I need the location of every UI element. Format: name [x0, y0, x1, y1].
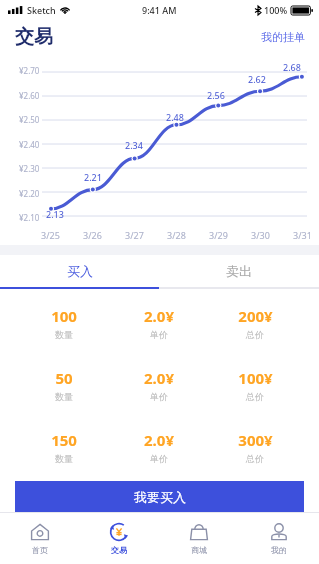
staticText: 交易	[111, 545, 127, 555]
button[interactable]: 商城	[159, 513, 239, 564]
staticText: 我的	[271, 545, 287, 555]
staticText: ¥2.60	[19, 90, 40, 101]
staticText: 2.0¥	[144, 306, 174, 326]
staticText: 2.0¥	[144, 368, 174, 388]
staticText: 300¥	[238, 430, 273, 450]
staticText: 单价	[150, 329, 168, 340]
staticText: 150	[51, 430, 77, 450]
staticText: 100%	[264, 4, 288, 16]
staticText: 单价	[150, 391, 168, 402]
staticText: 9:41 AM	[142, 4, 177, 16]
button[interactable]: 交易	[79, 513, 159, 564]
staticText: 200¥	[238, 306, 273, 326]
staticText: 数量	[55, 329, 73, 340]
staticText: 商城	[191, 545, 207, 555]
staticText: ¥2.50	[19, 114, 40, 125]
staticText: 2.48	[166, 111, 184, 123]
staticText: 买入	[67, 263, 93, 279]
staticText: 总价	[246, 329, 264, 340]
button[interactable]: 我的	[239, 513, 319, 564]
staticText: ¥2.30	[19, 163, 40, 174]
staticText: 交易	[15, 25, 53, 49]
staticText: 总价	[246, 391, 264, 402]
staticText: 数量	[55, 391, 73, 402]
button[interactable]: 首页	[0, 513, 79, 564]
button[interactable]: 我要买入	[15, 481, 304, 512]
staticText: 3/30	[251, 229, 270, 241]
staticText: 3/25	[41, 229, 60, 241]
button[interactable]: 卖出	[159, 255, 319, 287]
staticText: 我的挂单	[261, 30, 305, 44]
staticText: 3/31	[293, 229, 312, 241]
staticText: 3/26	[83, 229, 102, 241]
staticText: 2.13	[46, 208, 64, 220]
staticText: 3/28	[167, 229, 186, 241]
staticText: 100¥	[238, 368, 273, 388]
staticText: 3/27	[125, 229, 144, 241]
staticText: 2.0¥	[144, 430, 174, 450]
staticText: 2.68	[283, 61, 301, 73]
staticText: 数量	[55, 453, 73, 464]
staticText: 2.62	[248, 73, 266, 85]
button[interactable]: 100	[16, 297, 303, 349]
staticText: 2.34	[125, 139, 143, 151]
staticText: ¥2.20	[19, 188, 40, 199]
staticText: 50	[55, 368, 73, 388]
staticText: 3/29	[209, 229, 228, 241]
staticText: 2.21	[84, 171, 102, 183]
staticText: 首页	[32, 545, 48, 555]
button[interactable]: 我的挂单	[247, 25, 319, 49]
staticText: Sketch	[27, 4, 56, 16]
button[interactable]: 50	[16, 359, 303, 411]
staticText: ¥2.10	[19, 212, 40, 223]
staticText: 单价	[150, 453, 168, 464]
staticText: ¥2.40	[19, 139, 40, 150]
staticText: 100	[51, 306, 77, 326]
button[interactable]: 买入	[0, 255, 159, 287]
staticText: ¥2.70	[19, 65, 40, 76]
staticText: 我要买入	[134, 489, 186, 505]
staticText: 2.56	[207, 89, 225, 101]
staticText: 卖出	[226, 263, 252, 279]
button[interactable]: 150	[16, 421, 303, 473]
staticText: 总价	[246, 453, 264, 464]
